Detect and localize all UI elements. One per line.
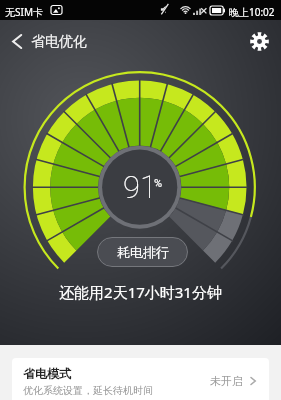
staticText: 晚上10:02 bbox=[229, 5, 275, 19]
staticText: 未开启 bbox=[210, 374, 243, 388]
staticText: % bbox=[154, 177, 163, 190]
button[interactable]: Back bbox=[0, 20, 33, 63]
staticText: 优化系统设置，延长待机时间 bbox=[23, 384, 153, 397]
staticText: 省电优化 bbox=[31, 33, 87, 51]
staticText: 耗电排行 bbox=[117, 244, 169, 260]
staticText: 省电模式 bbox=[23, 366, 71, 381]
button[interactable]: 省电模式 bbox=[12, 358, 269, 400]
button[interactable]: 耗电排行 bbox=[97, 237, 188, 267]
staticText: 还能用2天17小时31分钟 bbox=[0, 282, 281, 302]
staticText: 无SIM卡 bbox=[5, 5, 43, 19]
staticText: 91 bbox=[123, 169, 157, 205]
button[interactable]: Settings bbox=[237, 20, 281, 63]
